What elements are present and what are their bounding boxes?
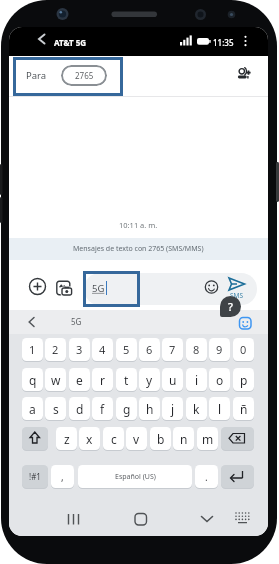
- button[interactable]: .: [195, 465, 218, 488]
- button[interactable]: [59, 311, 101, 332]
- button[interactable]: q: [22, 368, 43, 391]
- button[interactable]: e: [69, 368, 90, 391]
- button[interactable]: 0: [233, 338, 254, 361]
- button[interactable]: 6: [139, 338, 160, 361]
- button[interactable]: l: [209, 397, 230, 420]
- staticText: 2765: [75, 70, 94, 81]
- button[interactable]: 7: [162, 338, 183, 361]
- button[interactable]: a: [22, 397, 43, 420]
- button[interactable]: z: [56, 427, 77, 450]
- staticText: 10:11 a. m.: [119, 220, 158, 230]
- button[interactable]: [221, 465, 254, 488]
- staticText: !#1: [29, 471, 41, 482]
- button[interactable]: v: [126, 427, 147, 450]
- staticText: w: [51, 372, 61, 388]
- staticText: n: [180, 431, 188, 447]
- staticText: x: [86, 431, 93, 447]
- button[interactable]: g: [116, 397, 137, 420]
- staticText: 9: [216, 342, 223, 357]
- button[interactable]: [237, 65, 261, 89]
- button[interactable]: 2765: [61, 65, 107, 86]
- button[interactable]: [238, 316, 253, 331]
- staticText: c: [111, 431, 117, 447]
- staticText: 5G: [71, 316, 82, 327]
- button[interactable]: n: [173, 427, 194, 450]
- staticText: ?: [228, 299, 233, 314]
- staticText: z: [64, 431, 70, 447]
- button[interactable]: [221, 427, 254, 450]
- button[interactable]: [56, 280, 74, 297]
- staticText: ñ: [240, 401, 248, 417]
- button[interactable]: i: [186, 368, 207, 391]
- button[interactable]: !#1: [22, 465, 48, 488]
- staticText: u: [169, 372, 177, 388]
- button[interactable]: 4: [92, 338, 113, 361]
- button[interactable]: 8: [186, 338, 207, 361]
- button[interactable]: y: [139, 368, 160, 391]
- staticText: m: [202, 431, 214, 447]
- button[interactable]: ñ: [233, 397, 254, 420]
- button[interactable]: x: [79, 427, 100, 450]
- staticText: 5: [123, 342, 130, 357]
- staticText: 4: [99, 342, 106, 357]
- button[interactable]: [84, 273, 257, 305]
- button[interactable]: c: [103, 427, 124, 450]
- button[interactable]: m: [197, 427, 218, 450]
- staticText: AT&T 5G: [54, 37, 87, 48]
- staticText: d: [76, 401, 84, 417]
- button[interactable]: b: [150, 427, 171, 450]
- button[interactable]: ?: [220, 296, 241, 317]
- button[interactable]: [63, 512, 85, 532]
- button[interactable]: [22, 427, 48, 450]
- staticText: t: [124, 372, 129, 388]
- button[interactable]: s: [45, 397, 66, 420]
- staticText: r: [100, 372, 105, 388]
- button[interactable]: 5: [116, 338, 137, 361]
- button[interactable]: 9: [209, 338, 230, 361]
- staticText: 7: [169, 342, 176, 357]
- button[interactable]: t: [116, 368, 137, 391]
- staticText: v: [133, 431, 140, 447]
- staticText: 6: [146, 342, 153, 357]
- button[interactable]: [197, 512, 219, 532]
- button[interactable]: k: [186, 397, 207, 420]
- button[interactable]: 2: [45, 338, 66, 361]
- button[interactable]: Español (US): [78, 465, 192, 488]
- staticText: Mensajes de texto con 2765 (SMS/MMS): [73, 244, 204, 254]
- button[interactable]: 3: [69, 338, 90, 361]
- staticText: e: [76, 372, 83, 388]
- button[interactable]: [130, 512, 152, 532]
- button[interactable]: [204, 279, 220, 295]
- button[interactable]: f: [92, 397, 113, 420]
- button[interactable]: ,: [51, 465, 74, 488]
- staticText: Español (US): [115, 472, 156, 482]
- button[interactable]: [231, 512, 253, 532]
- button[interactable]: [28, 277, 47, 296]
- button[interactable]: w: [45, 368, 66, 391]
- button[interactable]: p: [233, 368, 254, 391]
- button[interactable]: 1: [22, 338, 43, 361]
- staticText: f: [100, 401, 105, 417]
- button[interactable]: d: [69, 397, 90, 420]
- staticText: 3: [76, 342, 83, 357]
- staticText: 5G: [92, 282, 105, 295]
- button[interactable]: j: [162, 397, 183, 420]
- staticText: b: [157, 431, 165, 447]
- button[interactable]: o: [209, 368, 230, 391]
- button[interactable]: [227, 275, 249, 301]
- button[interactable]: [9, 56, 268, 96]
- button[interactable]: u: [162, 368, 183, 391]
- staticText: q: [29, 372, 37, 388]
- button[interactable]: [22, 312, 42, 332]
- button[interactable]: h: [139, 397, 160, 420]
- button[interactable]: r: [92, 368, 113, 391]
- staticText: k: [193, 401, 200, 417]
- staticText: h: [146, 401, 154, 417]
- staticText: .: [205, 470, 208, 484]
- staticText: i: [195, 372, 199, 388]
- staticText: 11:35: [213, 37, 234, 48]
- staticText: y: [146, 372, 153, 388]
- staticText: l: [218, 401, 222, 417]
- staticText: o: [216, 372, 224, 388]
- staticText: 0: [240, 342, 247, 357]
